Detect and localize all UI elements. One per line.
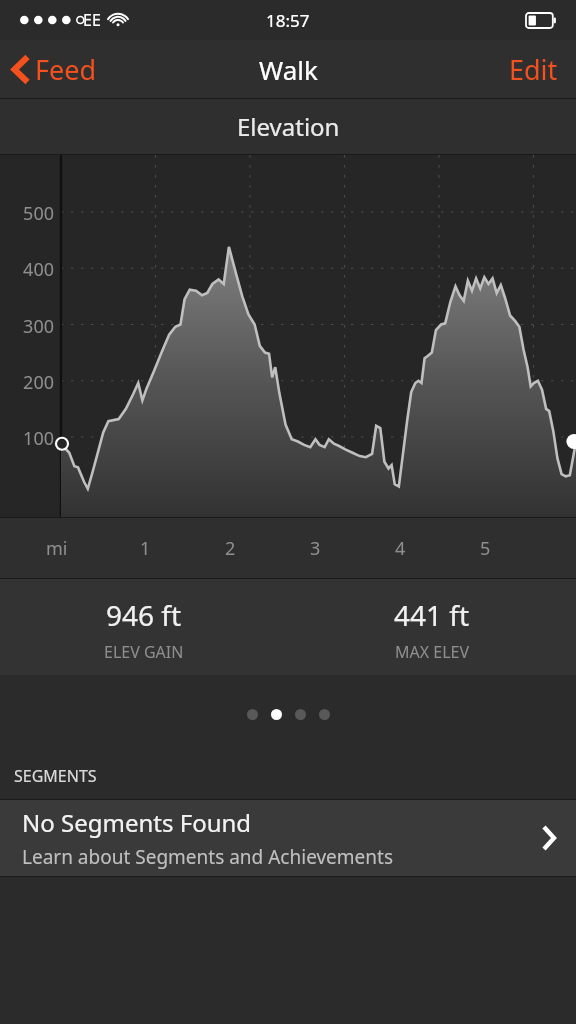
button[interactable]: 946 ft	[0, 579, 288, 675]
staticText: 100	[23, 426, 54, 451]
other: Open segments	[542, 825, 556, 851]
staticText: 1	[140, 536, 151, 561]
staticText: 200	[23, 370, 54, 395]
button[interactable]: Feed	[0, 43, 111, 96]
staticText: Walk	[259, 52, 318, 87]
staticText: 3	[310, 536, 321, 561]
staticText: No Segments Found	[22, 806, 252, 839]
staticText: 4	[395, 536, 406, 561]
staticText: Elevation	[237, 110, 340, 143]
staticText: 946 ft	[106, 596, 182, 634]
staticText: EE	[83, 9, 101, 31]
staticText: 18:57	[266, 9, 310, 32]
staticText: Feed	[35, 51, 97, 88]
staticText: ELEV GAIN	[104, 641, 184, 663]
staticText: mi	[46, 536, 68, 561]
staticText: Learn about Segments and Achievements	[22, 844, 394, 870]
staticText: SEGMENTS	[14, 765, 97, 787]
staticText: 2	[225, 536, 236, 561]
staticText: 500	[23, 201, 54, 226]
staticText: MAX ELEV	[395, 641, 470, 663]
staticText: 441 ft	[394, 596, 470, 634]
button[interactable]: 441 ft	[288, 579, 576, 675]
button[interactable]: Edit	[491, 41, 576, 98]
staticText: 300	[23, 314, 54, 339]
button[interactable]: No Segments Found	[0, 800, 576, 876]
staticText: 400	[23, 257, 54, 282]
staticText: 5	[480, 536, 491, 561]
